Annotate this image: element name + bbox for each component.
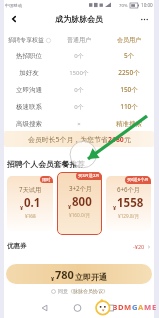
staticText: 精准搜索 [104, 120, 154, 128]
staticText: 元 [124, 135, 131, 144]
staticText: -¥20 [133, 243, 145, 250]
staticText: 0.1 [24, 195, 41, 211]
staticText: G [132, 302, 138, 312]
staticText: 高级搜索 [4, 120, 54, 128]
staticText: 7天试用 [19, 185, 42, 193]
staticText: 热招职位 [4, 52, 54, 60]
button[interactable]: ¥ [6, 264, 152, 284]
staticText: A [138, 302, 144, 312]
staticText: ¥ [113, 204, 117, 211]
staticText: 110个 [104, 102, 154, 111]
staticText: 6+6个月 [117, 185, 140, 193]
staticText: 同意 [58, 288, 68, 294]
staticText: 3+2个月 [69, 184, 92, 192]
staticText: 2250个 [104, 68, 154, 77]
button[interactable]: More options [134, 9, 154, 29]
staticText: 买6送6个月 [127, 177, 149, 183]
staticText: 《脉脉会员协议》 [68, 288, 108, 294]
staticText: D [118, 302, 124, 312]
staticText: 成为脉脉会员 [55, 14, 103, 24]
staticText: 0个 [54, 52, 104, 60]
staticText: 普通用户 [54, 36, 104, 44]
staticText: 10:00 [141, 2, 153, 8]
button[interactable]: Back [4, 9, 24, 29]
staticText: 1558 [117, 195, 144, 211]
staticText: 0个 [54, 103, 104, 111]
staticText: 中国移动 [5, 3, 23, 8]
staticText: 5个 [104, 51, 154, 60]
staticText: ¥ [68, 203, 72, 210]
staticText: 优惠券 [7, 242, 27, 250]
staticText: 立即沟通 [4, 86, 54, 94]
staticText: 780 [55, 267, 74, 282]
staticText: 加好友 [4, 69, 54, 77]
staticText: M [124, 302, 132, 312]
button[interactable]: 3+2个月 [57, 172, 102, 235]
staticText: ¥160.0/月 [69, 212, 91, 218]
staticText: 会员时长5个月，为您节省 [28, 135, 108, 144]
staticText: 买3月送2月 [78, 173, 100, 179]
staticText: ¥ [51, 275, 55, 282]
staticText: 0个 [54, 86, 104, 94]
button[interactable]: 7天试用 [7, 176, 53, 231]
button[interactable]: 6+6个月 [106, 176, 151, 231]
staticText: 800 [72, 194, 92, 210]
staticText: 70% [119, 2, 128, 8]
staticText: 150个 [104, 85, 154, 94]
staticText: E [152, 302, 157, 312]
button[interactable]: Agree checkbox [51, 289, 56, 294]
staticText: 3 [113, 302, 118, 312]
button[interactable]: -¥20 [133, 243, 151, 250]
staticText: ¥129.8/月 [118, 213, 140, 219]
staticText: M [144, 302, 152, 312]
staticText: 立即开通 [75, 272, 107, 282]
staticText: 极速联系 [4, 103, 54, 111]
staticText: 限时 [42, 177, 51, 182]
staticText: 招聘个人会员套餐推荐 [7, 159, 85, 169]
staticText: 1500个 [54, 69, 104, 77]
staticText: 会员用户 [104, 36, 154, 44]
staticText: ¥168 [25, 213, 36, 219]
staticText: 2180 [108, 135, 124, 144]
staticText: 招聘专享权益 [8, 36, 44, 44]
staticText: × [54, 120, 104, 128]
staticText: ¥ [20, 204, 24, 211]
